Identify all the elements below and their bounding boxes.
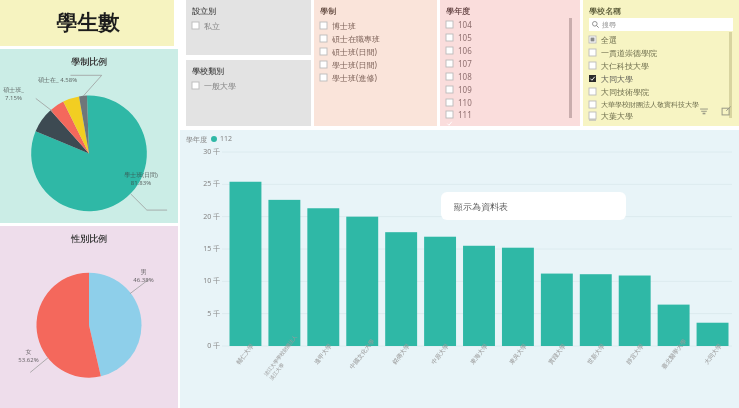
staticText: 性別比例 xyxy=(71,233,107,244)
staticText: 學制 xyxy=(320,6,336,16)
staticText: 中原大學 xyxy=(429,342,451,366)
staticText: 臺北醫學大學 xyxy=(660,337,688,371)
staticText: 碩士在_ 4.58% xyxy=(38,76,78,84)
staticText: 私立 xyxy=(204,21,220,31)
staticText: 靜宜大學 xyxy=(624,342,646,366)
button[interactable]: 私立 xyxy=(192,19,305,32)
staticText: 學士班(進修) xyxy=(332,72,377,83)
staticText: 學士班(日間) 81.83% xyxy=(124,171,158,187)
staticText: 10 千 xyxy=(184,276,220,286)
button[interactable]: 104 xyxy=(446,18,574,31)
staticText: 東吳大學 xyxy=(507,342,529,366)
button[interactable]: 篩選 xyxy=(697,104,711,118)
button[interactable]: 碩士在職專班 xyxy=(320,32,431,45)
staticText: 大同大學 xyxy=(702,342,724,366)
button[interactable]: 博士班 xyxy=(320,19,431,32)
button[interactable]: 108 xyxy=(446,70,574,83)
staticText: 112 xyxy=(220,134,233,144)
button[interactable]: 顯示為資料表 xyxy=(441,192,626,220)
button[interactable]: 大葉大學 xyxy=(589,111,733,120)
button[interactable]: 大同技術學院 xyxy=(589,85,733,98)
staticText: 111 xyxy=(458,109,472,120)
staticText: 學制比例 xyxy=(71,56,107,67)
staticText: 104 xyxy=(458,19,472,30)
staticText: 107 xyxy=(458,58,472,69)
staticText: 110 xyxy=(458,97,472,108)
button[interactable]: 大華學校財團法人敬實科技大學 xyxy=(589,98,733,111)
staticText: 碩士班_ 7.15% xyxy=(3,86,24,102)
staticText: 108 xyxy=(458,71,472,82)
staticText: 中國文化大學 xyxy=(348,337,376,371)
staticText: 學生數 xyxy=(56,10,119,36)
staticText: 女 53.62% xyxy=(18,348,39,364)
staticText: 25 千 xyxy=(184,179,220,189)
button[interactable]: 展開 xyxy=(719,104,733,118)
button[interactable]: 學士班(進修) xyxy=(320,71,431,84)
button[interactable]: 學年度 xyxy=(446,6,574,120)
staticText: 東海大學 xyxy=(468,342,490,366)
staticText: 學年度 xyxy=(186,135,207,144)
button[interactable]: 大仁科技大學 xyxy=(589,59,733,72)
button[interactable]: 學生數 xyxy=(0,0,174,46)
staticText: 學士班(日間) xyxy=(332,59,377,70)
button[interactable]: 性別比例 xyxy=(0,226,178,408)
button[interactable]: 110 xyxy=(446,96,574,109)
staticText: 碩士在職專班 xyxy=(332,34,380,44)
staticText: 逢甲大學 xyxy=(312,342,334,366)
button[interactable]: 一般大學 xyxy=(192,79,305,92)
staticText: 學年度 xyxy=(446,6,470,16)
staticText: 大華學校財團法人敬實科技大學 xyxy=(601,100,699,109)
staticText: 大葉大學 xyxy=(601,111,633,120)
button[interactable]: 搜尋 xyxy=(592,18,730,31)
staticText: 設立別 xyxy=(192,6,216,16)
staticText: 男 46.38% xyxy=(133,268,154,284)
staticText: 109 xyxy=(458,84,472,95)
button[interactable]: 學士班(日間) xyxy=(320,58,431,71)
staticText: 30 千 xyxy=(184,147,220,157)
staticText: 20 千 xyxy=(184,212,220,222)
staticText: 世新大學 xyxy=(585,342,607,366)
staticText: 淡江大學學校財團法人淡江大學 xyxy=(262,332,305,382)
button[interactable]: 學制 xyxy=(320,6,431,120)
staticText: 博士班 xyxy=(332,21,356,31)
staticText: 106 xyxy=(458,45,472,56)
staticText: 15 千 xyxy=(184,244,220,254)
staticText: 搜尋 xyxy=(602,20,616,29)
button[interactable]: 碩士班(日間) xyxy=(320,45,431,58)
button[interactable]: 105 xyxy=(446,31,574,44)
staticText: 學校名稱 xyxy=(589,6,621,16)
button[interactable]: 大同大學 xyxy=(589,72,733,85)
staticText: 實踐大學 xyxy=(546,342,568,366)
staticText: 大同技術學院 xyxy=(601,87,649,97)
button[interactable]: 106 xyxy=(446,44,574,57)
button[interactable]: 107 xyxy=(446,57,574,70)
staticText: 學校類別 xyxy=(192,66,224,76)
button[interactable]: 109 xyxy=(446,83,574,96)
staticText: 一般大學 xyxy=(204,81,236,91)
staticText: 大仁科技大學 xyxy=(601,61,649,71)
staticText: 0 千 xyxy=(184,341,220,351)
button[interactable]: 學校名稱 xyxy=(589,6,733,120)
button[interactable]: 一貫道崇德學院 xyxy=(589,46,733,59)
button[interactable]: 設立別 xyxy=(192,6,305,49)
button[interactable]: 學校類別 xyxy=(192,66,305,120)
staticText: 銘傳大學 xyxy=(390,342,412,366)
staticText: 大同大學 xyxy=(601,74,633,84)
staticText: 全選 xyxy=(601,35,617,45)
staticText: 輔仁大學 xyxy=(234,342,256,366)
button[interactable]: 111 xyxy=(446,109,574,120)
staticText: 一貫道崇德學院 xyxy=(601,48,657,58)
button[interactable]: 學制比例 xyxy=(0,49,178,223)
staticText: 105 xyxy=(458,32,472,43)
staticText: 碩士班(日間) xyxy=(332,46,377,57)
button[interactable]: 學年度 xyxy=(180,130,739,408)
button[interactable]: 全選 xyxy=(589,33,733,46)
staticText: 5 千 xyxy=(184,309,220,319)
staticText: 顯示為資料表 xyxy=(454,201,508,212)
